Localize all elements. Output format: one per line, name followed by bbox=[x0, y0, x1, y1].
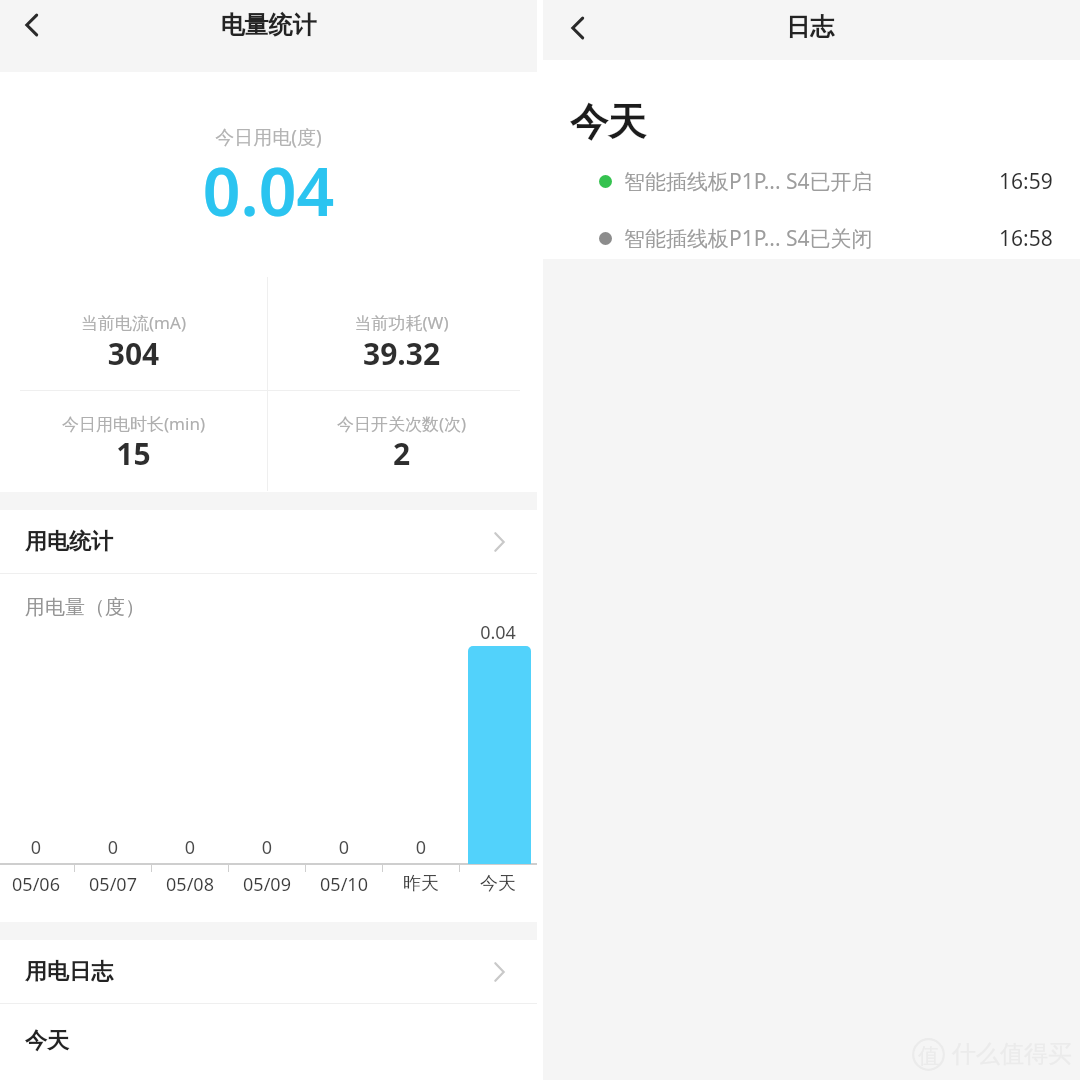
staticText: 16:59 bbox=[999, 167, 1053, 196]
staticText: 今天 bbox=[570, 98, 646, 146]
button[interactable]: 用电统计 bbox=[0, 510, 537, 573]
staticText: 15 bbox=[0, 433, 267, 474]
staticText: 当前功耗(W) bbox=[268, 311, 535, 334]
staticText: 今日用电(度) bbox=[0, 124, 537, 150]
staticText: 0 bbox=[6, 835, 66, 860]
staticText: 今日开关次数(次) bbox=[268, 412, 535, 435]
staticText: 用电日志 bbox=[25, 958, 494, 986]
button[interactable]: 智能插线板P1P... S4已开启 bbox=[543, 155, 1080, 207]
staticText: 0 bbox=[237, 835, 297, 860]
staticText: 用电统计 bbox=[25, 528, 494, 556]
staticText: 日志 bbox=[543, 12, 1077, 42]
staticText: 304 bbox=[0, 333, 267, 374]
staticText: 2 bbox=[268, 433, 535, 474]
button[interactable]: Back bbox=[9, 2, 55, 48]
button[interactable]: 用电日志 bbox=[0, 940, 537, 1003]
staticText: 0 bbox=[391, 835, 451, 860]
staticText: 今日用电时长(min) bbox=[0, 412, 267, 435]
staticText: 0 bbox=[160, 835, 220, 860]
staticText: 电量统计 bbox=[0, 10, 537, 40]
staticText: 0.04 bbox=[0, 145, 537, 235]
staticText: 0 bbox=[314, 835, 374, 860]
staticText: 39.32 bbox=[268, 333, 535, 374]
staticText: 用电量（度） bbox=[25, 595, 145, 620]
staticText: 当前电流(mA) bbox=[0, 311, 267, 334]
staticText: 05/10 bbox=[299, 872, 389, 897]
staticText: 智能插线板P1P... S4已开启 bbox=[624, 167, 999, 196]
staticText: 0.04 bbox=[458, 620, 538, 645]
staticText: 05/07 bbox=[68, 872, 158, 897]
staticText: 什么值得买 bbox=[952, 1039, 1072, 1069]
staticText: 智能插线板P1P... S4已关闭 bbox=[624, 224, 999, 253]
staticText: 昨天 bbox=[376, 872, 466, 895]
button[interactable]: 智能插线板P1P... S4已关闭 bbox=[543, 212, 1080, 264]
staticText: 16:58 bbox=[999, 224, 1053, 253]
button[interactable]: Back bbox=[555, 5, 601, 51]
staticText: 值 bbox=[918, 1043, 939, 1069]
staticText: 0 bbox=[83, 835, 143, 860]
staticText: 05/09 bbox=[222, 872, 312, 897]
staticText: 今天 bbox=[25, 1027, 69, 1055]
staticText: 今天 bbox=[453, 872, 543, 895]
staticText: 05/08 bbox=[145, 872, 235, 897]
staticText: 05/06 bbox=[0, 872, 81, 897]
